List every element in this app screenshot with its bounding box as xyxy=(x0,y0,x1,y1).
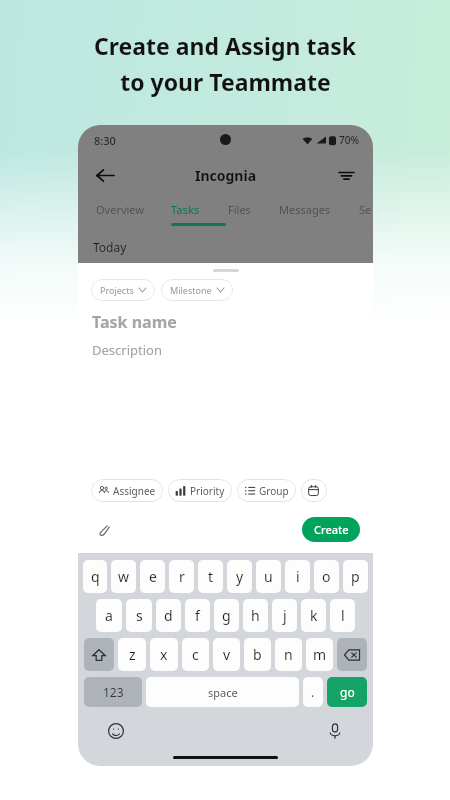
staticText: space xyxy=(208,685,238,700)
staticText: Files xyxy=(228,202,251,217)
button[interactable]: Filter xyxy=(329,158,363,192)
staticText: e xyxy=(149,567,157,586)
button[interactable]: go xyxy=(327,677,367,707)
button[interactable]: 123 xyxy=(84,677,142,707)
button[interactable]: . xyxy=(303,677,323,707)
staticText: f xyxy=(195,606,200,625)
staticText: a xyxy=(105,606,113,625)
button[interactable]: q xyxy=(83,560,107,593)
staticText: Incognia xyxy=(195,166,257,185)
button[interactable]: g xyxy=(214,599,239,632)
staticText: z xyxy=(129,645,136,664)
button[interactable]: r xyxy=(169,560,194,593)
button[interactable]: h xyxy=(243,599,268,632)
button[interactable]: Backspace xyxy=(337,638,367,671)
button[interactable]: l xyxy=(330,599,355,632)
staticText: d xyxy=(164,606,173,625)
button[interactable]: Emoji xyxy=(104,719,128,743)
button[interactable]: z xyxy=(118,638,146,671)
staticText: b xyxy=(253,645,262,664)
staticText: k xyxy=(310,606,318,625)
button[interactable]: Assignee xyxy=(91,479,163,502)
staticText: g xyxy=(222,606,231,625)
staticText: to your Teammate xyxy=(120,66,331,97)
staticText: n xyxy=(284,645,293,664)
staticText: h xyxy=(251,606,260,625)
button[interactable]: Projects xyxy=(91,279,155,301)
staticText: Projects xyxy=(100,284,134,296)
button[interactable]: Priority xyxy=(168,479,232,502)
staticText: Task name xyxy=(92,311,177,333)
staticText: Milestone xyxy=(170,284,212,296)
button[interactable]: Overview xyxy=(88,195,152,231)
button[interactable]: Files xyxy=(207,195,271,231)
staticText: Priority xyxy=(190,484,225,498)
staticText: r xyxy=(179,567,185,586)
button[interactable]: u xyxy=(256,560,281,593)
button[interactable]: f xyxy=(185,599,210,632)
staticText: w xyxy=(118,567,130,586)
button[interactable]: w xyxy=(111,560,136,593)
button[interactable]: Se xyxy=(333,195,373,231)
staticText: o xyxy=(322,567,331,586)
staticText: Tasks xyxy=(171,202,200,217)
staticText: p xyxy=(351,567,360,586)
staticText: Create xyxy=(314,522,349,537)
button[interactable]: y xyxy=(227,560,252,593)
staticText: Create and Assign task xyxy=(94,30,356,61)
button[interactable]: t xyxy=(198,560,223,593)
staticText: y xyxy=(236,567,244,586)
button[interactable]: n xyxy=(275,638,302,671)
button[interactable]: x xyxy=(150,638,178,671)
button[interactable]: e xyxy=(140,560,165,593)
staticText: s xyxy=(136,606,143,625)
staticText: . xyxy=(311,684,315,700)
button[interactable]: Shift xyxy=(84,638,114,671)
button[interactable]: a xyxy=(96,599,122,632)
button[interactable]: Attach file xyxy=(92,518,114,540)
staticText: q xyxy=(91,567,100,586)
staticText: go xyxy=(340,684,355,700)
button[interactable]: v xyxy=(213,638,240,671)
staticText: i xyxy=(296,567,300,586)
staticText: u xyxy=(264,567,273,586)
button[interactable]: b xyxy=(244,638,271,671)
staticText: Se xyxy=(359,202,372,217)
button[interactable]: i xyxy=(285,560,310,593)
staticText: 70% xyxy=(339,133,359,147)
staticText: Overview xyxy=(96,202,144,217)
button[interactable]: k xyxy=(301,599,326,632)
button[interactable]: Tasks xyxy=(153,195,217,231)
button[interactable]: d xyxy=(156,599,181,632)
button[interactable]: m xyxy=(306,638,333,671)
button[interactable]: o xyxy=(314,560,339,593)
staticText: Messages xyxy=(279,202,331,217)
staticText: Group xyxy=(259,484,289,498)
staticText: j xyxy=(283,606,287,625)
button[interactable]: Group xyxy=(237,479,296,502)
staticText: Assignee xyxy=(113,484,156,498)
staticText: t xyxy=(208,567,214,586)
button[interactable]: Milestone xyxy=(161,279,233,301)
staticText: 8:30 xyxy=(94,133,116,148)
button[interactable]: Messages xyxy=(273,195,337,231)
button[interactable]: Voice input xyxy=(323,719,347,743)
button[interactable]: Due date xyxy=(301,479,327,502)
staticText: 123 xyxy=(103,684,124,700)
staticText: l xyxy=(341,606,345,625)
staticText: Today xyxy=(93,239,127,255)
button[interactable]: p xyxy=(343,560,368,593)
staticText: x xyxy=(160,645,168,664)
button[interactable]: space xyxy=(146,677,299,707)
button[interactable]: c xyxy=(182,638,209,671)
button[interactable]: Create xyxy=(302,517,360,542)
staticText: Description xyxy=(92,341,162,359)
staticText: m xyxy=(313,645,327,664)
button[interactable]: s xyxy=(126,599,152,632)
button[interactable]: j xyxy=(272,599,297,632)
staticText: c xyxy=(192,645,199,664)
button[interactable]: Back xyxy=(88,158,122,192)
staticText: v xyxy=(223,645,231,664)
